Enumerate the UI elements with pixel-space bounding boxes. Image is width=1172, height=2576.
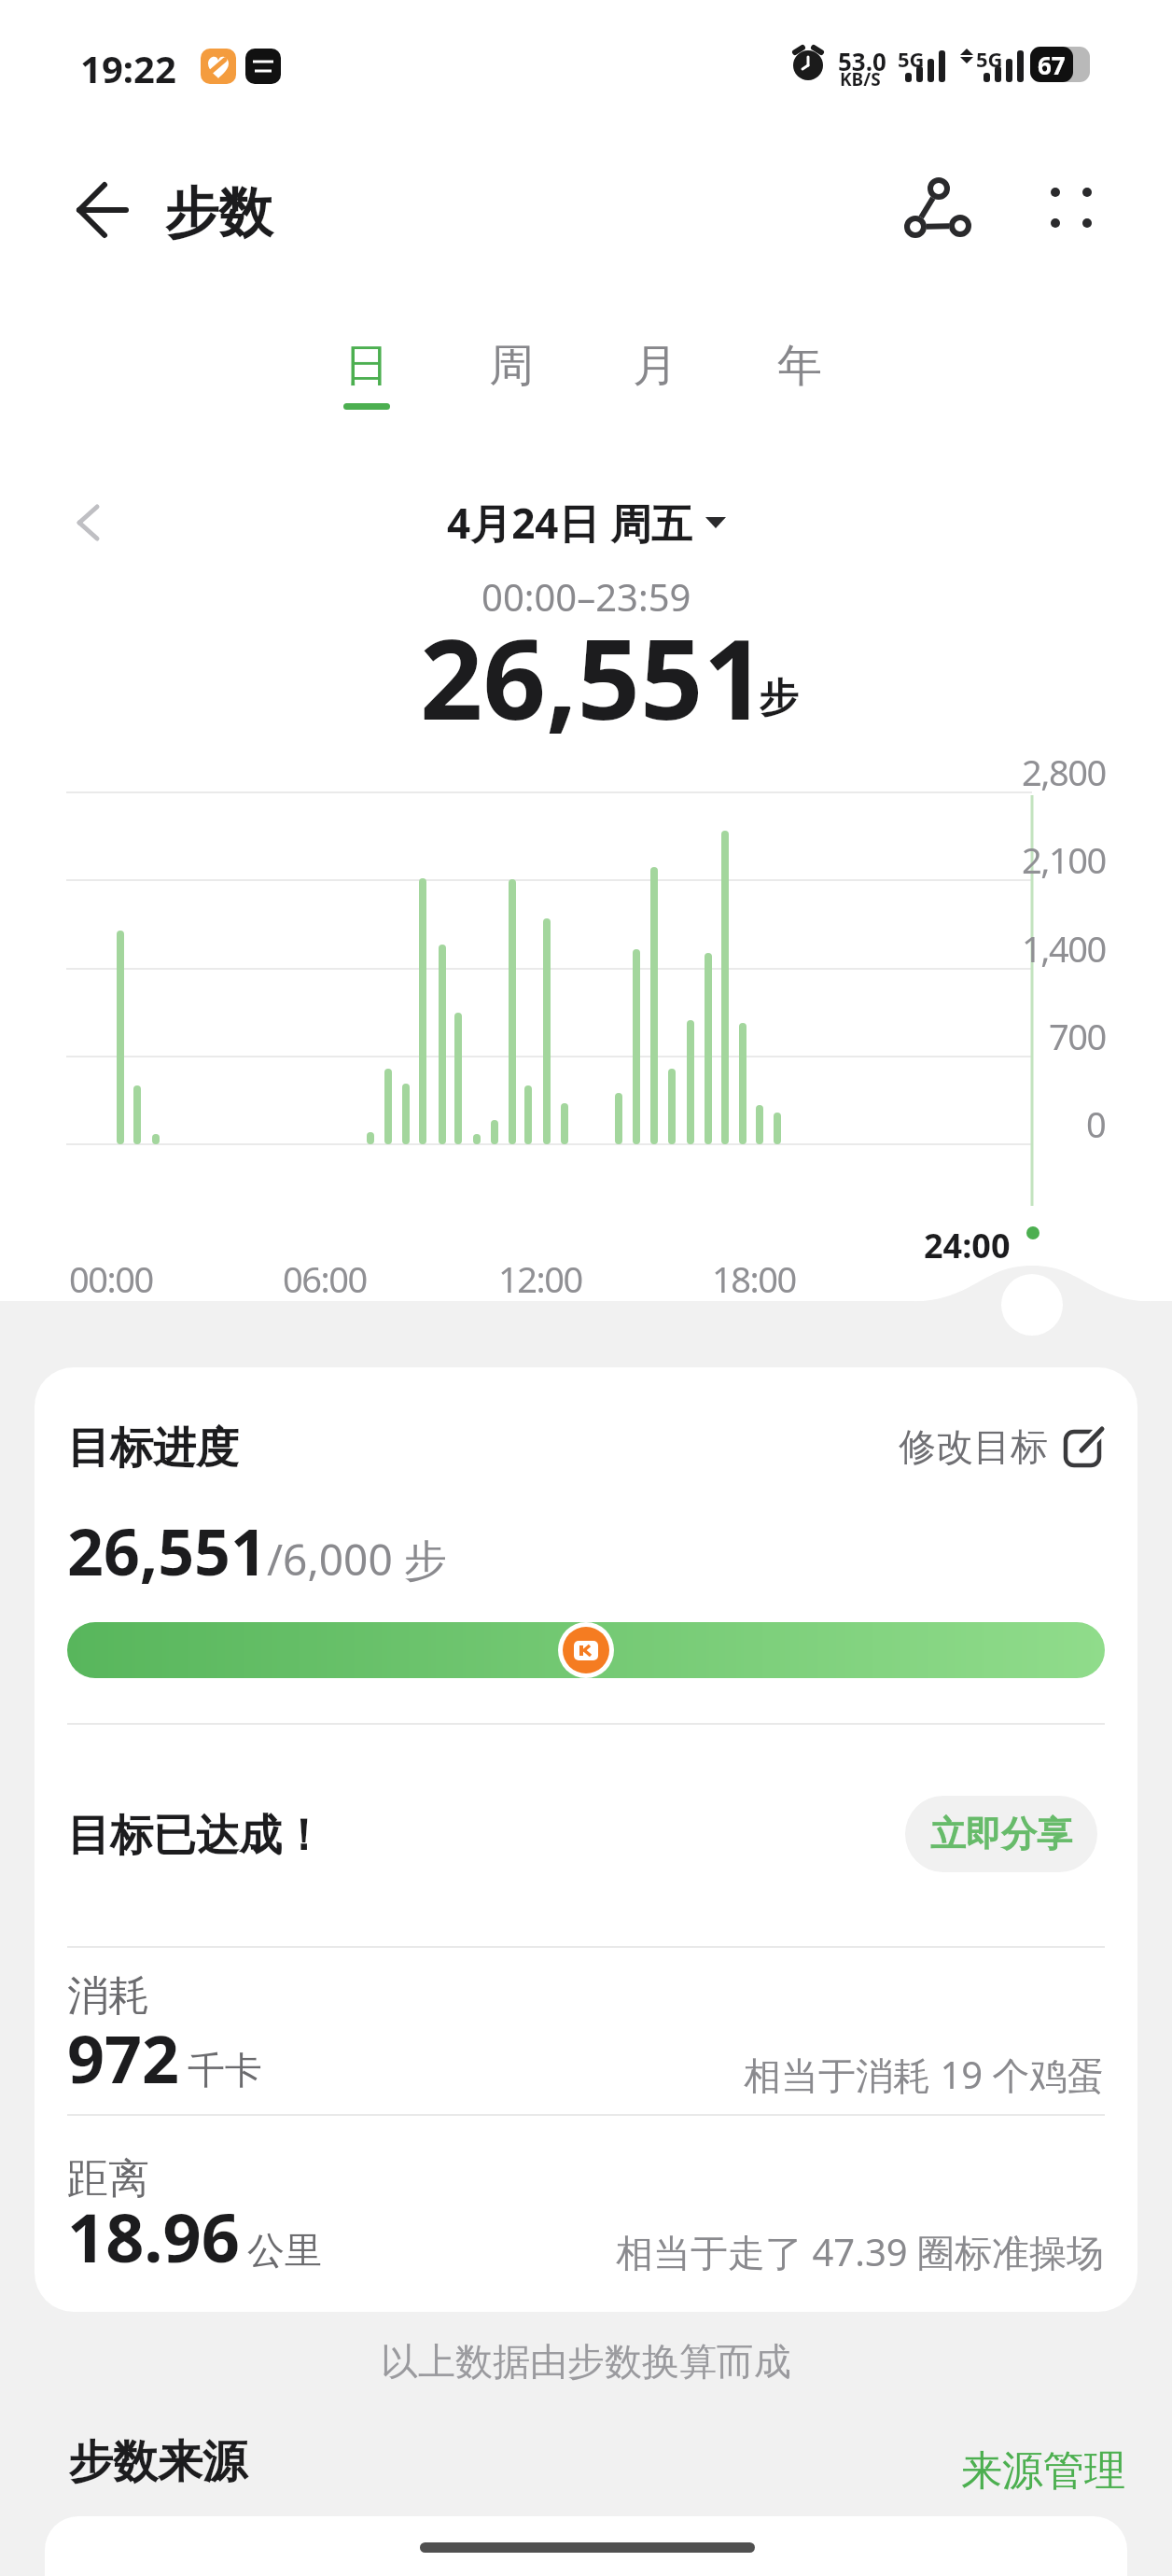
staticText: 4月24日 周五 (447, 495, 692, 551)
staticText: 06:00 (283, 1254, 367, 1297)
staticText: 步 (759, 674, 798, 723)
staticText: 24:00 (924, 1223, 1011, 1266)
staticText: 相当于走了 47.39 圈标准操场 (616, 2226, 1105, 2277)
button[interactable]: 来源管理 (0, 2445, 1125, 2497)
staticText: 67 (1038, 49, 1066, 81)
staticText: 0 (1086, 1099, 1106, 1142)
staticText: 5G (976, 45, 1003, 73)
staticText: 00:00–23:59 (481, 571, 691, 622)
staticText: 12:00 (498, 1254, 582, 1297)
staticText: 972 (67, 2013, 180, 2102)
staticText: 公里 (247, 2227, 322, 2274)
staticText: 距离 (67, 2153, 149, 2205)
staticText: 2,800 (1022, 748, 1106, 791)
staticText: 18:00 (712, 1254, 796, 1297)
staticText: 年 (777, 338, 822, 394)
button[interactable]: 修改目标 (899, 1423, 1048, 1470)
staticText: 目标已达成！ (67, 1809, 325, 1863)
button[interactable]: 立即分享 (905, 1796, 1097, 1872)
staticText: 消耗 (67, 1970, 149, 2022)
staticText: 5G (898, 45, 925, 73)
staticText: 19:22 (80, 43, 176, 93)
button[interactable]: 月 (599, 317, 711, 414)
staticText: 月 (633, 338, 677, 394)
staticText: 相当于消耗 19 个鸡蛋 (744, 2049, 1105, 2100)
button[interactable]: 年 (744, 317, 856, 414)
button[interactable] (1032, 168, 1112, 248)
staticText: 步数来源 (68, 2434, 247, 2490)
staticText: /6,000 步 (267, 1530, 447, 1589)
staticText: 立即分享 (930, 1812, 1072, 1856)
staticText: 周 (489, 338, 534, 394)
staticText: 26,551 (67, 1507, 267, 1594)
staticText: 700 (1049, 1012, 1106, 1055)
staticText: 目标进度 (67, 1421, 239, 1476)
staticText: 1,400 (1022, 924, 1106, 967)
staticText: 26,551 (420, 602, 767, 752)
staticText: 千卡 (188, 2047, 262, 2093)
staticText: 修改目标 (899, 1423, 1048, 1470)
staticText: 以上数据由步数换算而成 (381, 2338, 791, 2385)
button[interactable] (886, 161, 989, 258)
staticText: 53.0 (838, 45, 886, 77)
staticText: 步数 (164, 179, 272, 247)
staticText: 2,100 (1022, 835, 1106, 878)
staticText: 18.96 (67, 2191, 240, 2282)
button[interactable]: 日 (311, 317, 423, 414)
staticText: 日 (344, 338, 389, 394)
staticText: KB/S (840, 67, 881, 91)
button[interactable] (58, 175, 142, 245)
button[interactable]: 4月24日 周五 (0, 495, 1172, 551)
button[interactable]: 周 (455, 317, 567, 414)
staticText: 00:00 (69, 1254, 153, 1297)
staticText: 来源管理 (961, 2445, 1125, 2497)
